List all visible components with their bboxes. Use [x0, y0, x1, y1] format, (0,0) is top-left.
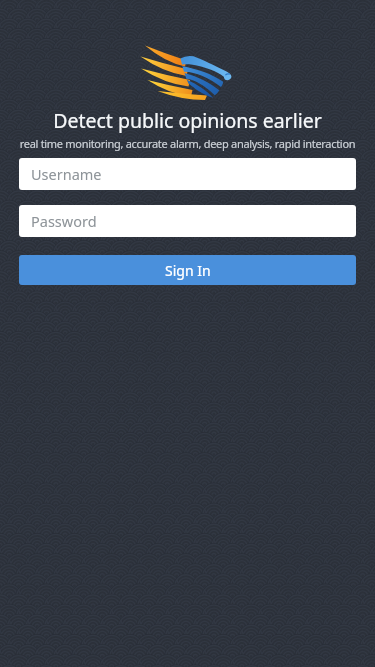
staticText: real time monitoring, accurate alarm, de… [0, 136, 375, 151]
button[interactable]: Username [19, 158, 356, 190]
staticText: Password [31, 211, 97, 231]
staticText: Sign In [165, 261, 211, 280]
staticText: Detect public opinions earlier [0, 107, 375, 134]
button[interactable]: Sign In [19, 255, 356, 285]
button[interactable]: Password [19, 205, 356, 237]
staticText: Username [31, 164, 102, 184]
